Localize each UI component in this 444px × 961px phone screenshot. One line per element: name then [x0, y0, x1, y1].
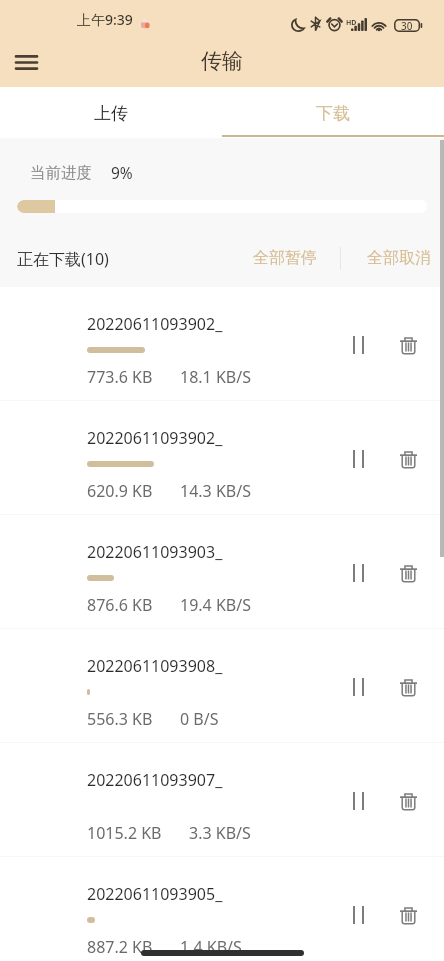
- staticText: 1.4 KB/S: [180, 936, 242, 958]
- button[interactable]: Delete: [386, 893, 430, 937]
- staticText: 20220611093902_: [87, 313, 223, 335]
- button[interactable]: Delete: [386, 779, 430, 823]
- button[interactable]: 下载: [222, 87, 444, 138]
- button[interactable]: Delete: [386, 665, 430, 709]
- button[interactable]: 20220611093907_: [0, 743, 444, 856]
- staticText: 全部暂停: [253, 248, 317, 268]
- staticText: 18.1 KB/S: [180, 366, 251, 388]
- staticText: 0 B/S: [180, 708, 219, 730]
- staticText: 上传: [94, 103, 128, 124]
- button[interactable]: 20220611093905_: [0, 857, 444, 961]
- button[interactable]: 20220611093902_: [0, 287, 444, 400]
- staticText: 9%: [111, 162, 133, 183]
- staticText: 1015.2 KB: [87, 822, 162, 844]
- button[interactable]: 20220611093908_: [0, 629, 444, 742]
- staticText: 20220611093903_: [87, 541, 223, 563]
- staticText: 620.9 KB: [87, 480, 153, 502]
- staticText: 当前进度: [30, 163, 92, 183]
- staticText: 19.4 KB/S: [180, 594, 251, 616]
- staticText: 20220611093905_: [87, 883, 223, 905]
- button[interactable]: Pause: [336, 665, 380, 709]
- button[interactable]: Menu: [4, 40, 48, 84]
- button[interactable]: Delete: [386, 551, 430, 595]
- staticText: 上午9:39: [77, 10, 133, 29]
- staticText: 773.6 KB: [87, 366, 153, 388]
- button[interactable]: Pause: [336, 779, 380, 823]
- button[interactable]: 20220611093903_: [0, 515, 444, 628]
- button[interactable]: 全部取消: [365, 236, 433, 280]
- button[interactable]: Delete: [386, 437, 430, 481]
- staticText: HD: [346, 18, 357, 28]
- staticText: 14.3 KB/S: [180, 480, 251, 502]
- staticText: 876.6 KB: [87, 594, 153, 616]
- button[interactable]: 20220611093902_: [0, 401, 444, 514]
- staticText: 20220611093907_: [87, 769, 223, 791]
- staticText: 20220611093908_: [87, 655, 223, 677]
- button[interactable]: Pause: [336, 551, 380, 595]
- staticText: 30: [401, 19, 413, 32]
- button[interactable]: Pause: [336, 437, 380, 481]
- button[interactable]: 上传: [0, 87, 222, 138]
- staticText: 全部取消: [367, 248, 431, 268]
- staticText: 20220611093902_: [87, 427, 223, 449]
- staticText: 传输: [201, 48, 243, 74]
- staticText: 正在下载(10): [17, 248, 109, 270]
- button[interactable]: 全部暂停: [251, 236, 319, 280]
- button[interactable]: Pause: [336, 323, 380, 367]
- staticText: 556.3 KB: [87, 708, 153, 730]
- button[interactable]: Delete: [386, 323, 430, 367]
- staticText: 3.3 KB/S: [189, 822, 251, 844]
- button[interactable]: Pause: [336, 893, 380, 937]
- staticText: 887.2 KB: [87, 936, 153, 958]
- staticText: 下载: [316, 103, 350, 124]
